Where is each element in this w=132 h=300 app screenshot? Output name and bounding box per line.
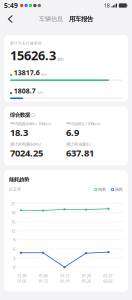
staticText: 12: [11, 228, 15, 234]
staticText: km: [41, 71, 47, 77]
staticText: 02.02: [103, 278, 112, 284]
staticText: 01.27: [103, 273, 112, 278]
staticText: 01.12: [39, 278, 48, 284]
staticText: km: [57, 56, 63, 62]
button[interactable]: Back: [4, 12, 17, 25]
staticText: 用车报告: [69, 15, 93, 23]
staticText: 18.3: [10, 126, 28, 139]
staticText: 01.06: [39, 273, 48, 278]
staticText: 车辆信息: [39, 15, 63, 23]
staticText: 0: [13, 264, 15, 270]
staticText: 5:49: [4, 1, 18, 10]
staticText: 累计耗电量(kWh): [10, 141, 41, 147]
staticText: km: [37, 89, 43, 95]
staticText: 累计汽车行驶里程: [10, 41, 42, 46]
staticText: 油耗: [115, 187, 123, 192]
staticText: 15626.3: [10, 47, 56, 64]
staticText: 15: [11, 219, 15, 225]
staticText: 累计耗油量(L): [66, 141, 90, 147]
staticText: 平均油耗(L/100km): [66, 121, 100, 127]
staticText: 637.81: [66, 147, 94, 159]
button[interactable]: 车辆信息: [39, 15, 63, 23]
staticText: 01.20: [82, 273, 91, 278]
staticText: 21: [11, 201, 15, 206]
staticText: 18: [11, 210, 15, 216]
staticText: 6.9: [66, 126, 79, 139]
staticText: 3: [13, 255, 15, 261]
staticText: 6: [13, 246, 15, 252]
staticText: 12.30: [17, 273, 26, 278]
staticText: 01.19: [60, 278, 69, 284]
staticText: 1808.7: [14, 86, 36, 95]
staticText: 近五周: [9, 187, 21, 192]
staticText: 18: [104, 2, 110, 9]
staticText: 综合数据: [10, 111, 30, 118]
staticText: 7024.25: [10, 147, 43, 159]
button[interactable]: 用车报告: [69, 15, 93, 23]
staticText: 13817.6: [14, 68, 40, 77]
staticText: 电耗: [98, 187, 106, 192]
staticText: 01.26: [82, 278, 91, 284]
staticText: 01.13: [60, 273, 69, 278]
staticText: 9: [13, 237, 15, 243]
staticText: 01.05: [17, 278, 26, 284]
staticText: 能耗趋势: [9, 176, 29, 183]
staticText: 平均电耗(kWh/100km): [10, 121, 51, 127]
